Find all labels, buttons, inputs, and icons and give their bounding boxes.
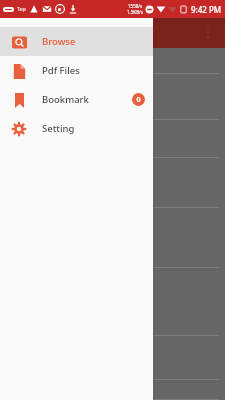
button[interactable]: Pdf Files xyxy=(0,56,153,85)
staticText: 1.5KB/s xyxy=(127,9,143,15)
staticText: Setting xyxy=(42,122,75,135)
staticText: 9:42 PM xyxy=(191,4,222,15)
staticText: Top xyxy=(17,6,26,13)
button[interactable]: Bookmark xyxy=(0,85,153,114)
staticText: 1558/s xyxy=(128,3,143,9)
staticText: Bookmark xyxy=(42,93,89,106)
staticText: Pdf Files xyxy=(42,64,80,77)
button[interactable]: Setting xyxy=(0,114,153,143)
staticText: 0 xyxy=(136,95,141,105)
button[interactable]: Browse xyxy=(0,27,153,56)
staticText: Browse xyxy=(42,35,76,48)
